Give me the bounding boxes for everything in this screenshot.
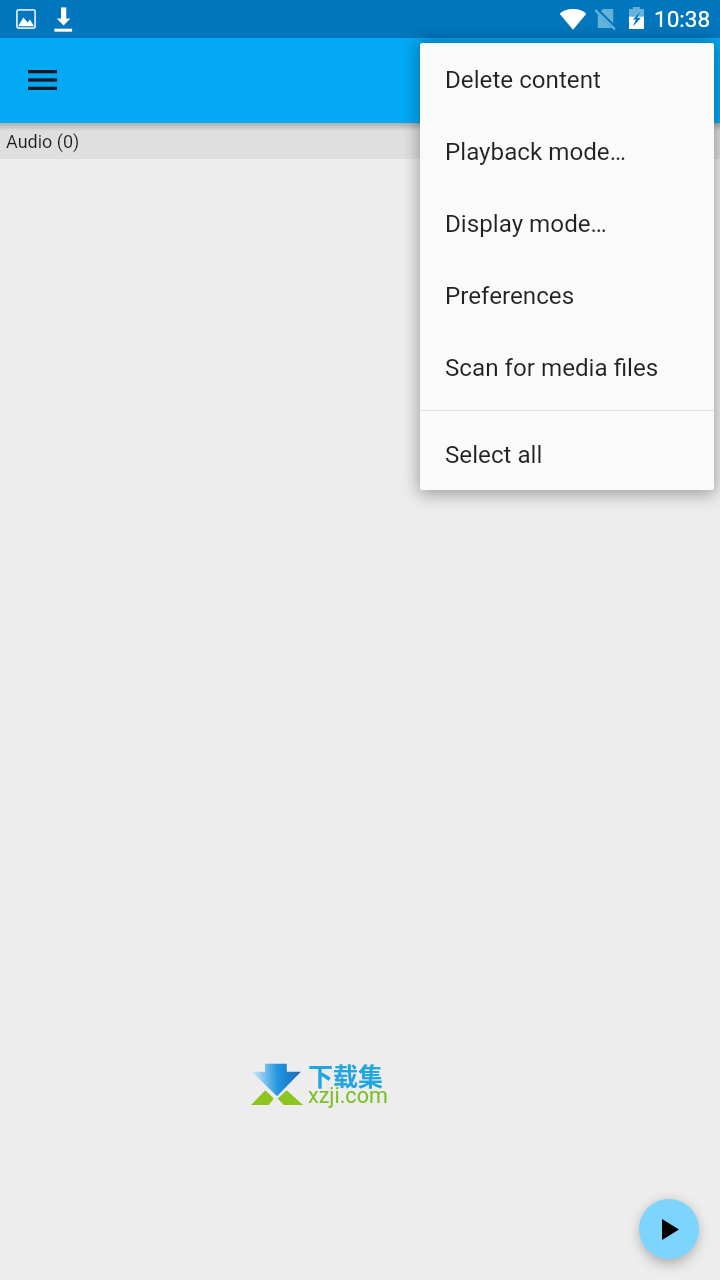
- staticText: 10:38: [654, 6, 711, 32]
- button[interactable]: Scan for media files: [420, 332, 714, 404]
- staticText: Playback mode…: [445, 138, 626, 166]
- button[interactable]: Preferences: [420, 260, 714, 332]
- button[interactable]: Playback mode…: [420, 116, 714, 188]
- staticText: Display mode…: [445, 210, 607, 238]
- button[interactable]: Play: [639, 1199, 699, 1259]
- staticText: Audio (0): [6, 131, 80, 152]
- button[interactable]: Open navigation drawer: [12, 51, 72, 111]
- staticText: Preferences: [445, 282, 575, 310]
- button[interactable]: Delete content: [420, 44, 714, 116]
- staticText: Scan for media files: [445, 354, 659, 382]
- staticText: Delete content: [445, 66, 601, 94]
- button[interactable]: Display mode…: [420, 188, 714, 260]
- staticText: Select all: [445, 441, 543, 469]
- staticText: xzji.com: [308, 1083, 388, 1108]
- button[interactable]: Select all: [420, 411, 714, 490]
- staticText: 下载集: [308, 1057, 384, 1093]
